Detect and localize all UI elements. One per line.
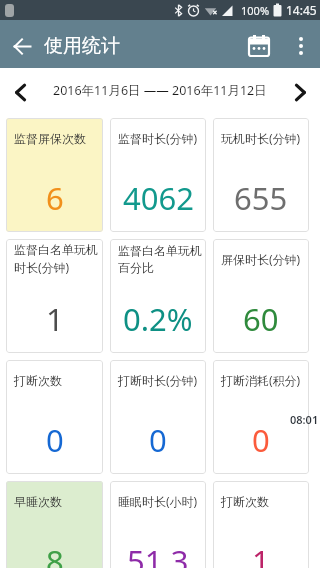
staticText: 打断次数 xyxy=(221,494,269,509)
staticText: 睡眠时长(小时) xyxy=(118,493,198,509)
staticText: 14:45 xyxy=(286,2,317,18)
staticText: 100% xyxy=(241,3,270,18)
button[interactable]: 屏保时长(分钟) xyxy=(213,239,309,353)
staticText: 早睡次数 xyxy=(14,494,62,509)
staticText: 打断时长(分钟) xyxy=(118,372,198,388)
button[interactable]: 睡眠时长(小时) xyxy=(110,481,206,568)
button[interactable]: 监督屏保次数 xyxy=(6,118,103,232)
button[interactable]: 监督时长(分钟) xyxy=(110,118,206,232)
button[interactable] xyxy=(280,70,320,114)
staticText: 0 xyxy=(46,419,64,461)
staticText: 0.2% xyxy=(123,298,193,340)
staticText: 打断消耗(积分) xyxy=(221,372,301,388)
button[interactable]: 打断消耗(积分) xyxy=(213,360,309,474)
button[interactable]: 早睡次数 xyxy=(6,481,103,568)
button[interactable] xyxy=(0,24,44,68)
staticText: 1 xyxy=(252,540,270,568)
button[interactable] xyxy=(282,24,320,68)
staticText: 0 xyxy=(252,419,270,461)
button[interactable]: 打断次数 xyxy=(6,360,103,474)
staticText: 655 xyxy=(234,177,288,219)
button[interactable] xyxy=(0,70,40,114)
staticText: 08:01 xyxy=(290,412,319,427)
staticText: 0 xyxy=(149,419,167,461)
staticText: 玩机时长(分钟) xyxy=(221,130,301,146)
staticText: 51.3 xyxy=(127,540,189,568)
staticText: 8 xyxy=(46,540,64,568)
staticText: 2016年11月6日 —— 2016年11月12日 xyxy=(53,82,267,99)
button[interactable]: 监督白名单玩机 百分比 xyxy=(110,239,206,353)
button[interactable]: 玩机时长(分钟) xyxy=(213,118,309,232)
staticText: 6 xyxy=(46,177,64,219)
button[interactable] xyxy=(236,24,282,68)
staticText: 60 xyxy=(243,298,279,340)
staticText: 打断次数 xyxy=(14,373,62,388)
staticText: 监督时长(分钟) xyxy=(118,130,198,146)
staticText: 监督屏保次数 xyxy=(14,131,86,146)
button[interactable]: 打断时长(分钟) xyxy=(110,360,206,474)
staticText: 监督白名单玩机 时长(分钟) xyxy=(14,242,98,276)
staticText: 使用统计 xyxy=(44,34,120,58)
button[interactable]: 监督白名单玩机 时长(分钟) xyxy=(6,239,103,353)
staticText: 屏保时长(分钟) xyxy=(221,251,301,267)
staticText: 监督白名单玩机 百分比 xyxy=(118,243,202,276)
staticText: 1 xyxy=(46,298,64,340)
button[interactable]: 打断次数 xyxy=(213,481,309,568)
staticText: 4062 xyxy=(123,177,194,219)
